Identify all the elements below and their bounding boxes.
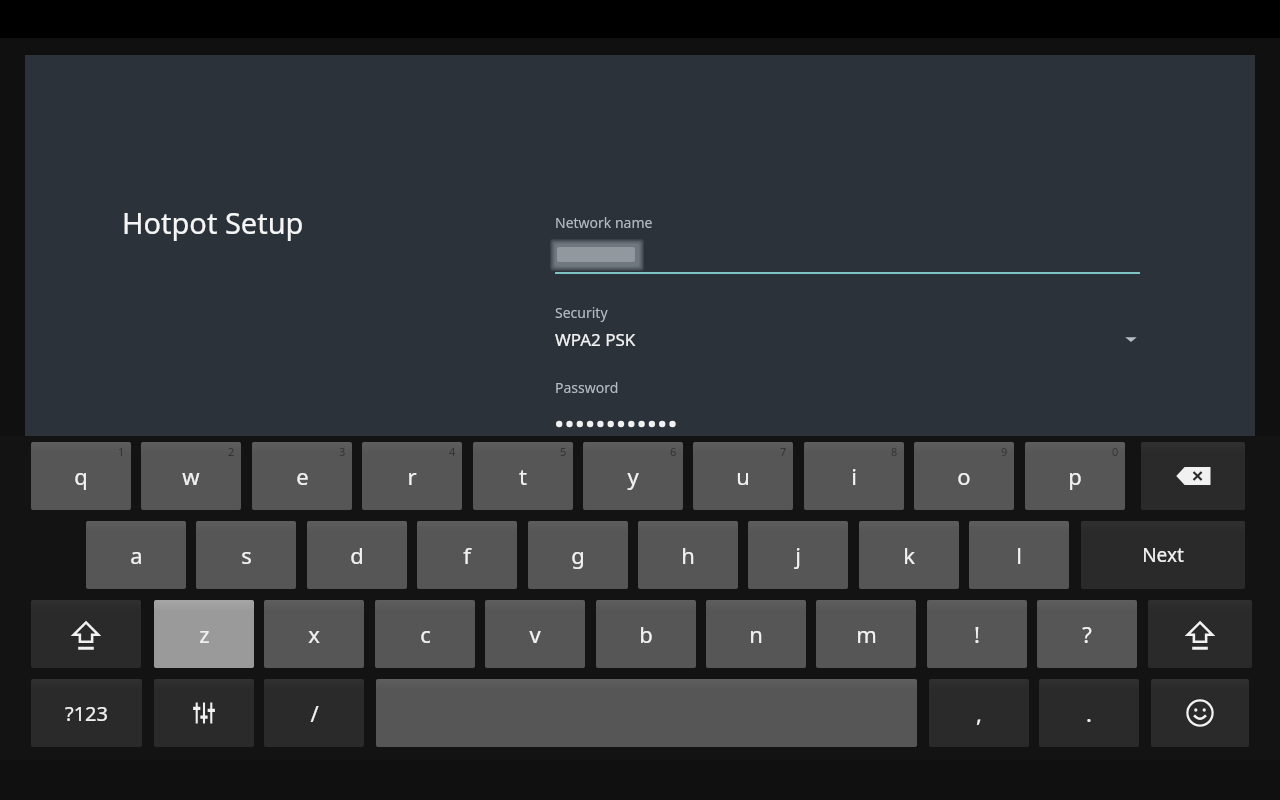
staticText: o [957, 461, 971, 491]
staticText: 7 [780, 444, 787, 459]
button[interactable]: Shift [31, 600, 141, 668]
button[interactable]: / [264, 679, 364, 747]
staticText: v [529, 619, 541, 649]
staticText: q [74, 461, 88, 491]
staticText: l [1016, 540, 1022, 570]
button[interactable]: Backspace [1141, 442, 1245, 510]
button[interactable]: . [1039, 679, 1139, 747]
staticText: ? [1082, 619, 1092, 649]
staticText: i [851, 461, 857, 491]
staticText: t [519, 461, 527, 491]
staticText: Password [555, 378, 619, 397]
button[interactable]: n [706, 600, 806, 668]
staticText: s [241, 540, 252, 570]
staticText: u [736, 461, 750, 491]
button[interactable]: x [264, 600, 364, 668]
other: Security options [1122, 330, 1140, 348]
staticText: n [749, 619, 763, 649]
button[interactable]: v [485, 600, 585, 668]
staticText: ?123 [65, 700, 108, 727]
staticText: w [182, 461, 200, 491]
staticText: m [856, 619, 877, 649]
staticText: 2 [228, 444, 235, 459]
staticText: j [795, 540, 801, 570]
staticText: h [681, 540, 695, 570]
staticText: 0 [1112, 444, 1119, 459]
staticText: . [1086, 698, 1092, 728]
button[interactable]: b [596, 600, 696, 668]
button[interactable]: ? [1037, 600, 1137, 668]
button[interactable]: l [969, 521, 1069, 589]
staticText: d [350, 540, 364, 570]
staticText: WPA2 PSK [555, 328, 636, 351]
button[interactable]: m [816, 600, 916, 668]
staticText: Hotpot Setup [122, 203, 304, 242]
button[interactable]: e [252, 442, 352, 510]
staticText: 6 [670, 444, 677, 459]
button[interactable]: o [914, 442, 1014, 510]
staticText: Next [1142, 542, 1184, 568]
button[interactable]: p [1025, 442, 1125, 510]
staticText: c [420, 619, 431, 649]
button[interactable]: WPA2 PSK [555, 326, 1140, 352]
button[interactable]: s [196, 521, 296, 589]
staticText: a [130, 540, 143, 570]
button[interactable]: j [748, 521, 848, 589]
button[interactable]: Input settings [154, 679, 254, 747]
button[interactable]: k [859, 521, 959, 589]
button[interactable]: ?123 [31, 679, 142, 747]
staticText: / [310, 698, 319, 728]
staticText: ! [974, 619, 980, 649]
button[interactable]: z [154, 600, 254, 668]
button[interactable]: ! [927, 600, 1027, 668]
button[interactable]: r [362, 442, 462, 510]
button[interactable]: c [375, 600, 475, 668]
button[interactable]: d [307, 521, 407, 589]
button[interactable]: y [583, 442, 683, 510]
button[interactable] [555, 415, 1140, 433]
staticText: 5 [560, 444, 567, 459]
button[interactable]: Next [1081, 521, 1245, 589]
staticText: The password must have at least 8 charac… [555, 453, 833, 471]
staticText: 9 [1001, 444, 1008, 459]
button[interactable]: t [473, 442, 573, 510]
staticText: y [627, 461, 639, 491]
staticText: Security [555, 303, 608, 322]
staticText: Network name [555, 213, 653, 232]
staticText: b [639, 619, 653, 649]
button[interactable]: g [528, 521, 628, 589]
staticText: z [199, 619, 210, 649]
staticText: 8 [891, 444, 898, 459]
staticText: p [1068, 461, 1082, 491]
staticText: r [407, 461, 417, 491]
button[interactable]: i [804, 442, 904, 510]
staticText: 4 [449, 444, 456, 459]
staticText: f [463, 540, 471, 570]
button[interactable]: f [417, 521, 517, 589]
staticText: e [296, 461, 309, 491]
button[interactable] [555, 242, 1140, 268]
button[interactable]: Shift [1148, 600, 1252, 668]
staticText: x [308, 619, 320, 649]
button[interactable]: a [86, 521, 186, 589]
staticText: , [976, 698, 982, 728]
button[interactable]: u [693, 442, 793, 510]
staticText: k [903, 540, 915, 570]
staticText: 3 [339, 444, 346, 459]
button[interactable]: q [31, 442, 131, 510]
staticText: g [571, 540, 585, 570]
button[interactable]: w [141, 442, 241, 510]
button[interactable]: Emoji [1151, 679, 1249, 747]
button[interactable]: , [929, 679, 1029, 747]
staticText: 1 [118, 444, 125, 459]
button[interactable]: h [638, 521, 738, 589]
